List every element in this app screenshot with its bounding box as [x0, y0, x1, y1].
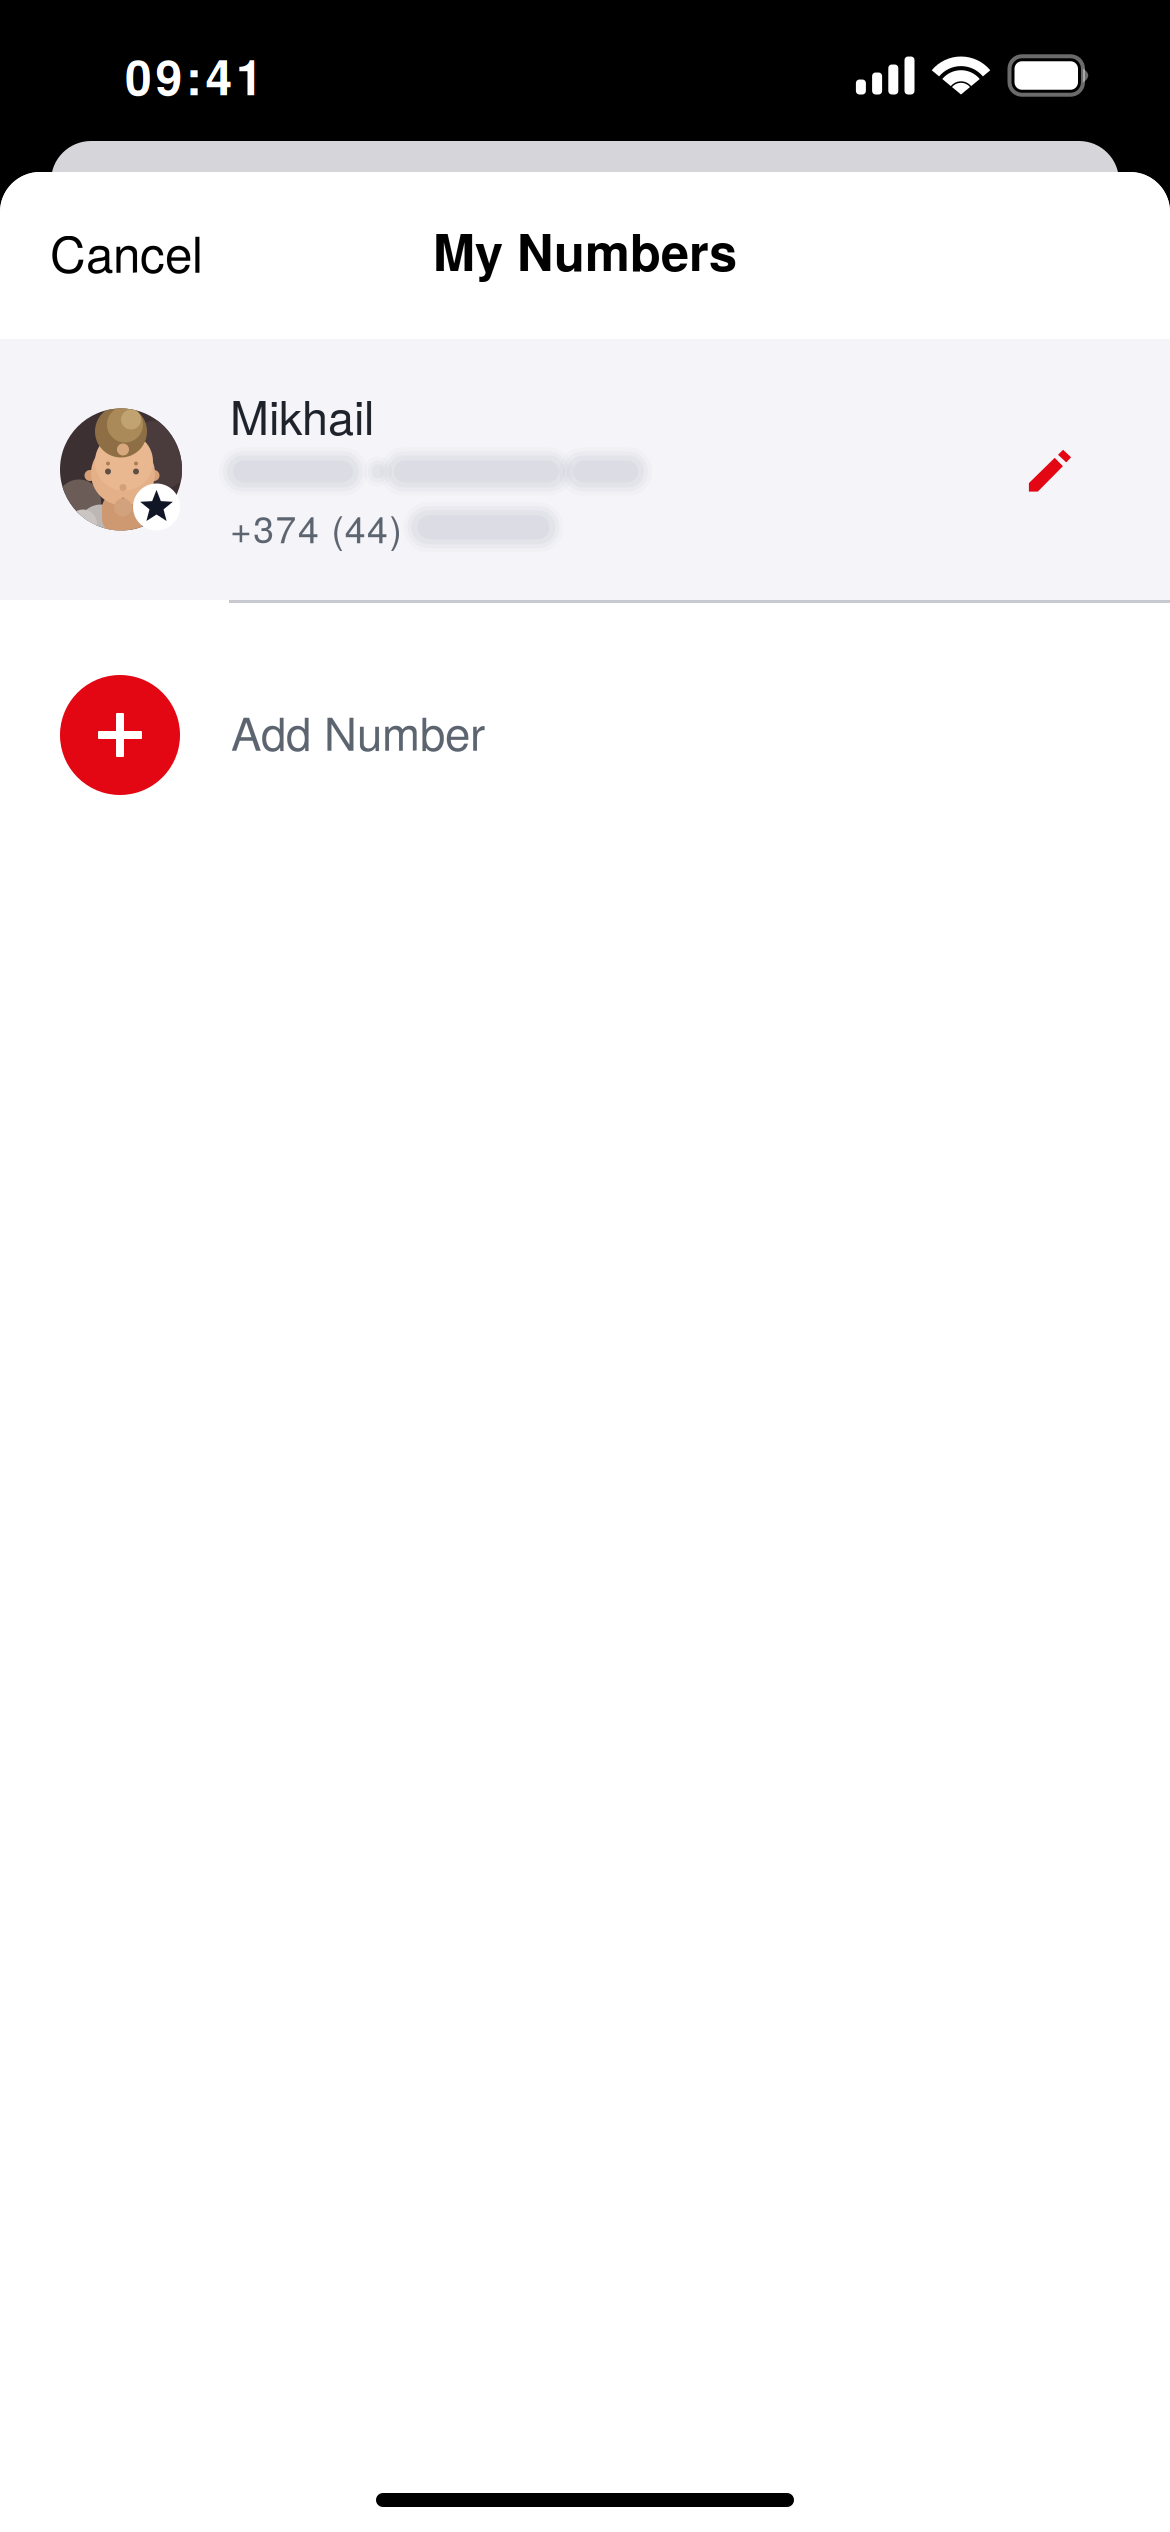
button[interactable]: Cancel: [0, 172, 233, 339]
staticText: Cancel: [50, 216, 203, 287]
staticText: +374 (44): [230, 500, 401, 554]
staticText: 0: [125, 41, 152, 110]
staticText: :: [186, 41, 202, 110]
staticText: My Numbers: [433, 214, 737, 287]
staticText: 1: [236, 41, 263, 110]
staticText: 9: [155, 41, 182, 110]
staticText: Add Number: [231, 698, 485, 764]
staticText: Mikhail: [230, 381, 374, 448]
button[interactable]: Add Number: [0, 603, 1170, 867]
staticText: 4: [205, 41, 232, 110]
button[interactable]: Mikhail: [0, 339, 1170, 600]
